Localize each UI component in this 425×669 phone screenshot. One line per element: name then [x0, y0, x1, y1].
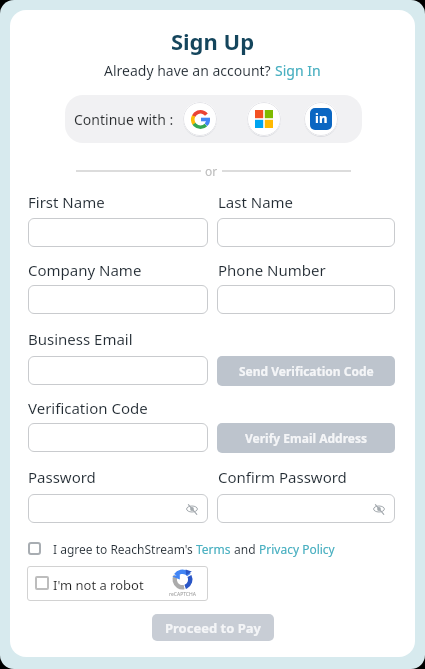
staticText: reCAPTCHA: [169, 591, 196, 598]
button[interactable]: [247, 102, 281, 136]
button[interactable]: Privacy Policy: [259, 541, 335, 557]
button[interactable]: Send Verification Code: [217, 356, 395, 386]
staticText: in: [315, 109, 328, 127]
button[interactable]: [373, 503, 385, 515]
button[interactable]: Terms: [196, 541, 231, 557]
staticText: Verification Code: [28, 398, 148, 418]
staticText: Confirm Password: [218, 467, 347, 487]
button[interactable]: [28, 542, 41, 555]
button[interactable]: [183, 102, 217, 136]
staticText: Phone Number: [218, 260, 326, 280]
staticText: Send Verification Code: [239, 363, 374, 379]
staticText: Proceed to Pay: [165, 619, 262, 637]
staticText: or: [205, 163, 218, 179]
staticText: Business Email: [28, 329, 133, 349]
staticText: Verify Email Address: [245, 430, 367, 446]
staticText: Last Name: [218, 192, 294, 212]
button[interactable]: Sign In: [275, 61, 321, 80]
staticText: Terms: [196, 541, 231, 557]
staticText: Continue with :: [74, 110, 174, 129]
button[interactable]: [186, 503, 198, 515]
button[interactable]: [35, 576, 49, 590]
staticText: Already have an account?: [104, 61, 275, 80]
staticText: Sign In: [275, 61, 321, 80]
button[interactable]: in: [304, 102, 338, 136]
staticText: Password: [28, 467, 96, 487]
button[interactable]: Verify Email Address: [217, 423, 395, 453]
staticText: and: [231, 541, 259, 557]
staticText: Company Name: [28, 260, 142, 280]
button[interactable]: Proceed to Pay: [152, 614, 274, 641]
staticText: First Name: [28, 192, 105, 212]
staticText: Privacy Policy: [259, 541, 335, 557]
staticText: I'm not a robot: [53, 576, 144, 594]
staticText: I agree to ReachStream's: [53, 541, 196, 557]
staticText: Sign Up: [0, 26, 425, 56]
